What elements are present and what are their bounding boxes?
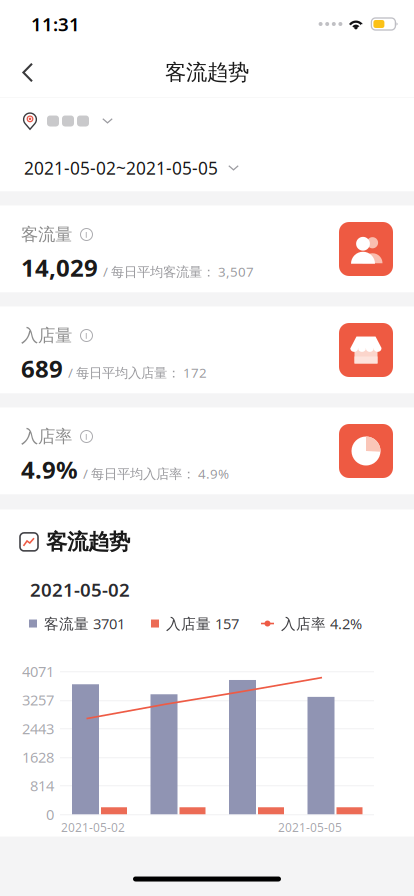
staticText: 客流趋势 [165, 59, 249, 86]
staticText: / 每日平均入店率： 4.9% [83, 465, 229, 482]
staticText: 客流趋势 [46, 529, 130, 555]
staticText: 814 [30, 776, 54, 795]
staticText: 14,029 [21, 252, 98, 283]
staticText: / 每日平均客流量： 3,507 [103, 263, 254, 280]
staticText: 2021-05-02~2021-05-05 [24, 156, 218, 179]
staticText: 11:31 [31, 12, 80, 36]
staticText: 4071 [22, 661, 54, 681]
staticText: 2021-05-05 [278, 819, 342, 835]
staticText: 客流量 [21, 224, 72, 245]
button[interactable]: Back [22, 50, 74, 94]
staticText: 入店量 157 [166, 614, 239, 633]
button[interactable]: 2021-05-02~2021-05-05 [0, 144, 414, 191]
staticText: 入店率 4.2% [281, 614, 362, 633]
staticText: / 每日平均入店量： 172 [68, 364, 207, 381]
staticText: 客流量 3701 [44, 614, 125, 633]
button[interactable]: 选择门店 [0, 97, 414, 144]
staticText: 入店率 [21, 426, 72, 447]
staticText: 2021-05-02 [61, 819, 125, 835]
staticText: 0 [46, 804, 54, 824]
staticText: 入店量 [21, 325, 72, 346]
staticText: 2021-05-02 [30, 577, 130, 602]
staticText: 2443 [22, 719, 54, 738]
staticText: 689 [21, 353, 63, 384]
staticText: 4.9% [21, 454, 78, 485]
staticText: 3257 [22, 690, 54, 710]
staticText: 1628 [22, 747, 54, 767]
